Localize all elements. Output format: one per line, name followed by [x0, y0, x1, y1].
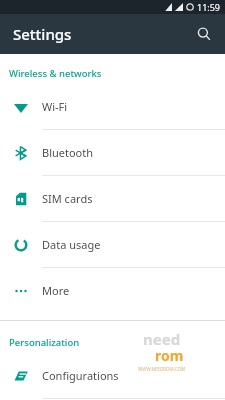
button[interactable]: Data usage	[0, 222, 225, 268]
button[interactable]: Wi-Fi	[0, 84, 225, 130]
staticText: Wireless & networks	[9, 67, 102, 80]
staticText: Bluetooth	[42, 145, 94, 160]
button[interactable]: Bluetooth	[0, 130, 225, 176]
staticText: Settings	[13, 24, 72, 44]
staticText: More	[42, 283, 70, 298]
staticText: need	[143, 329, 181, 349]
staticText: Personalization	[9, 336, 80, 349]
button[interactable]: Search	[189, 19, 219, 49]
button[interactable]: SIM cards	[0, 176, 225, 222]
button[interactable]: Configurations	[0, 353, 225, 399]
staticText: Wi-Fi	[42, 99, 68, 114]
staticText: 11:59	[197, 1, 221, 13]
staticText: Configurations	[42, 368, 119, 383]
staticText: rom	[155, 346, 184, 365]
button[interactable]: More	[0, 268, 225, 313]
staticText: SIM cards	[42, 191, 93, 206]
staticText: WWW.NEEDROM.COM	[138, 366, 185, 372]
staticText: Data usage	[42, 237, 101, 252]
